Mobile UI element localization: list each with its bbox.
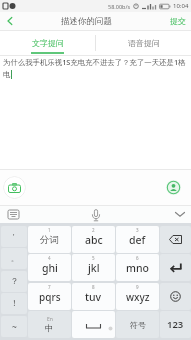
staticText: tuv (85, 290, 102, 304)
staticText: 8 (92, 284, 95, 290)
button[interactable]: 123 (160, 311, 191, 338)
staticText: abc (85, 233, 103, 247)
button[interactable]: tuv (72, 283, 115, 310)
staticText: 58.00b/s (108, 3, 131, 10)
staticText: 123 (167, 318, 184, 331)
button[interactable]: ！ (1, 293, 27, 314)
staticText: 文字提问 (32, 38, 64, 48)
button[interactable] (173, 208, 186, 221)
button[interactable]: jkl (72, 254, 115, 281)
button[interactable] (72, 311, 115, 338)
staticText: 。 (11, 254, 18, 263)
button[interactable] (0, 12, 20, 30)
staticText: 9 (136, 284, 139, 290)
staticText: 为什么我手机乐视1S充电充不进去了？充了一天还是1格 电 (3, 57, 186, 79)
button[interactable] (160, 283, 191, 310)
staticText: ghi (42, 261, 58, 275)
button[interactable]: pqrs (28, 283, 71, 310)
button[interactable]: mno (116, 254, 159, 281)
staticText: 语音提问 (128, 38, 160, 48)
button[interactable]: ghi (28, 254, 71, 281)
staticText: 分词 (40, 234, 59, 246)
staticText: 提交 (170, 16, 186, 26)
staticText: En (47, 316, 53, 323)
button[interactable]: ？ (1, 271, 27, 292)
button[interactable]: En (28, 311, 71, 338)
staticText: ！ (10, 298, 19, 309)
staticText: 10:04 (173, 2, 189, 10)
button[interactable]: 符号 (116, 311, 159, 338)
button[interactable]: 语音提问 (96, 31, 191, 55)
staticText: 符号 (130, 320, 146, 330)
staticText: 6 (136, 255, 139, 261)
button[interactable]: wxyz (116, 283, 159, 310)
button[interactable]: 提交 (170, 16, 186, 26)
button[interactable] (160, 226, 191, 253)
staticText: ’ (13, 232, 15, 242)
staticText: 1 (48, 227, 51, 233)
button[interactable]: ’ (1, 226, 27, 247)
staticText: 5 (92, 255, 95, 261)
staticText: 7 (48, 284, 51, 290)
button[interactable] (7, 208, 20, 221)
button[interactable]: 文字提问 (0, 31, 95, 55)
staticText: 2 (92, 227, 95, 233)
staticText: 中 (45, 323, 54, 334)
staticText: ？ (10, 276, 19, 287)
button[interactable] (89, 208, 103, 222)
staticText: def (129, 233, 146, 247)
staticText: pqrs (39, 290, 61, 304)
staticText: ~ (12, 321, 17, 333)
staticText: mno (126, 261, 149, 275)
button[interactable]: 分词 (28, 226, 71, 253)
staticText: 4 (48, 255, 51, 261)
button[interactable]: def (116, 226, 159, 253)
button[interactable]: ~ (1, 316, 27, 337)
staticText: 3 (136, 227, 139, 233)
button[interactable] (166, 180, 181, 195)
staticText: wxyz (126, 290, 150, 304)
button[interactable]: abc (72, 226, 115, 253)
staticText: jkl (88, 261, 100, 275)
button[interactable] (3, 176, 26, 199)
staticText: 描述你的问题 (61, 16, 112, 27)
button[interactable] (160, 254, 191, 281)
